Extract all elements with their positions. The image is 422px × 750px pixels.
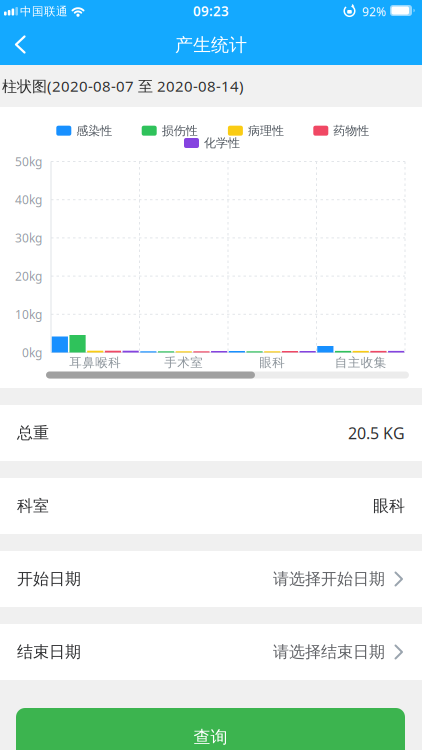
staticText: 产生统计 <box>175 34 247 56</box>
staticText: 感染性 <box>76 123 112 138</box>
button[interactable]: 开始日期 <box>0 551 422 607</box>
staticText: 请选择结束日期 <box>273 642 385 662</box>
staticText: 损伤性 <box>162 123 198 138</box>
staticText: 自主收集 <box>335 355 387 370</box>
staticText: 耳鼻喉科 <box>69 355 121 370</box>
staticText: 0kg <box>22 344 42 361</box>
staticText: 手术室 <box>164 355 203 370</box>
staticText: 科室 <box>17 496 49 516</box>
staticText: 中国联通 <box>20 4 68 19</box>
staticText: 30kg <box>15 230 42 246</box>
staticText: 药物性 <box>333 123 369 138</box>
staticText: 化学性 <box>204 135 240 150</box>
staticText: 病理性 <box>248 123 284 138</box>
button[interactable]: 科室 <box>0 478 422 534</box>
staticText: 眼科 <box>373 496 405 516</box>
staticText: 结束日期 <box>17 642 81 662</box>
staticText: 查询 <box>193 726 227 748</box>
staticText: 20.5 KG <box>348 422 405 444</box>
staticText: 20kg <box>15 268 42 284</box>
staticText: 10kg <box>15 306 42 322</box>
button[interactable]: 查询 <box>16 708 405 750</box>
staticText: 09:23 <box>193 2 229 20</box>
staticText: 请选择开始日期 <box>273 569 385 589</box>
staticText: 开始日期 <box>17 569 81 589</box>
staticText: 眼科 <box>259 355 285 370</box>
staticText: 50kg <box>15 153 42 170</box>
staticText: 柱状图(2020-08-07 至 2020-08-14) <box>2 76 244 96</box>
button[interactable]: 返回 <box>0 22 44 65</box>
staticText: 92% <box>362 3 386 20</box>
staticText: 40kg <box>15 191 42 208</box>
button[interactable]: 结束日期 <box>0 624 422 680</box>
staticText: 总重 <box>17 423 49 443</box>
